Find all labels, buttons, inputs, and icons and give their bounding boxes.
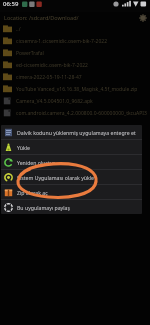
staticText: Location: /sdcard/Download/ — [4, 14, 79, 21]
button[interactable]: Settings — [139, 14, 147, 22]
button[interactable]: Bu uygulamayı paylaş — [1, 200, 142, 214]
staticText: Zip olarak aç — [17, 189, 48, 196]
staticText: cicsemra-1.cicsemidic.osem-bik-7-2022 — [16, 38, 108, 45]
button[interactable]: Camera_V4.5.004501.0_9682.apk — [0, 95, 150, 107]
staticText: ../ — [16, 26, 21, 33]
staticText: Bu uygulamayı paylaş — [17, 204, 70, 211]
button[interactable]: com.android.camera_4.2.000800.0-60000000… — [0, 107, 150, 119]
button[interactable]: ed-cicsemidic.osem-bik-7-2022 — [0, 59, 150, 71]
staticText: YouTube Vanced_v16.16.38_Magisk_4.5f_mod… — [16, 86, 138, 93]
button[interactable]: YouTube Vanced_v16.16.38_Magisk_4.5f_mod… — [0, 83, 150, 95]
button[interactable]: Zip olarak aç — [1, 185, 142, 199]
button[interactable]: ../ — [0, 23, 150, 35]
staticText: Yükle — [17, 144, 31, 151]
staticText: ed-cicsemidic.osem-bik-7-2022 — [16, 62, 88, 69]
staticText: Camera_V4.5.004501.0_9682.apk — [16, 98, 93, 105]
button[interactable]: cimera-2022-05-19-11-28-47 — [0, 71, 150, 83]
staticText: com.android.camera_4.2.000800.0-60000000… — [16, 110, 150, 117]
button[interactable]: Dalvik kodunu yüklenmiş uygulamaya enteg… — [1, 125, 142, 139]
staticText: Sistem Uygulaması olarak yükle — [17, 174, 95, 181]
staticText: 06:59 — [3, 0, 19, 8]
staticText: Yeniden oluştur — [17, 159, 56, 166]
button[interactable]: PowerTrafal — [0, 47, 150, 59]
staticText: cimera-2022-05-19-11-28-47 — [16, 74, 82, 81]
button[interactable]: Yükle — [1, 140, 142, 154]
button[interactable]: Location: /sdcard/Download/ — [0, 12, 150, 23]
button[interactable]: Yeniden oluştur — [1, 155, 142, 169]
staticText: Dalvik kodunu yüklenmiş uygulamaya enteg… — [17, 129, 136, 136]
staticText: PowerTrafal — [16, 50, 44, 57]
button[interactable]: Sistem Uygulaması olarak yükle — [1, 170, 142, 184]
button[interactable]: cicsemra-1.cicsemidic.osem-bik-7-2022 — [0, 35, 150, 47]
